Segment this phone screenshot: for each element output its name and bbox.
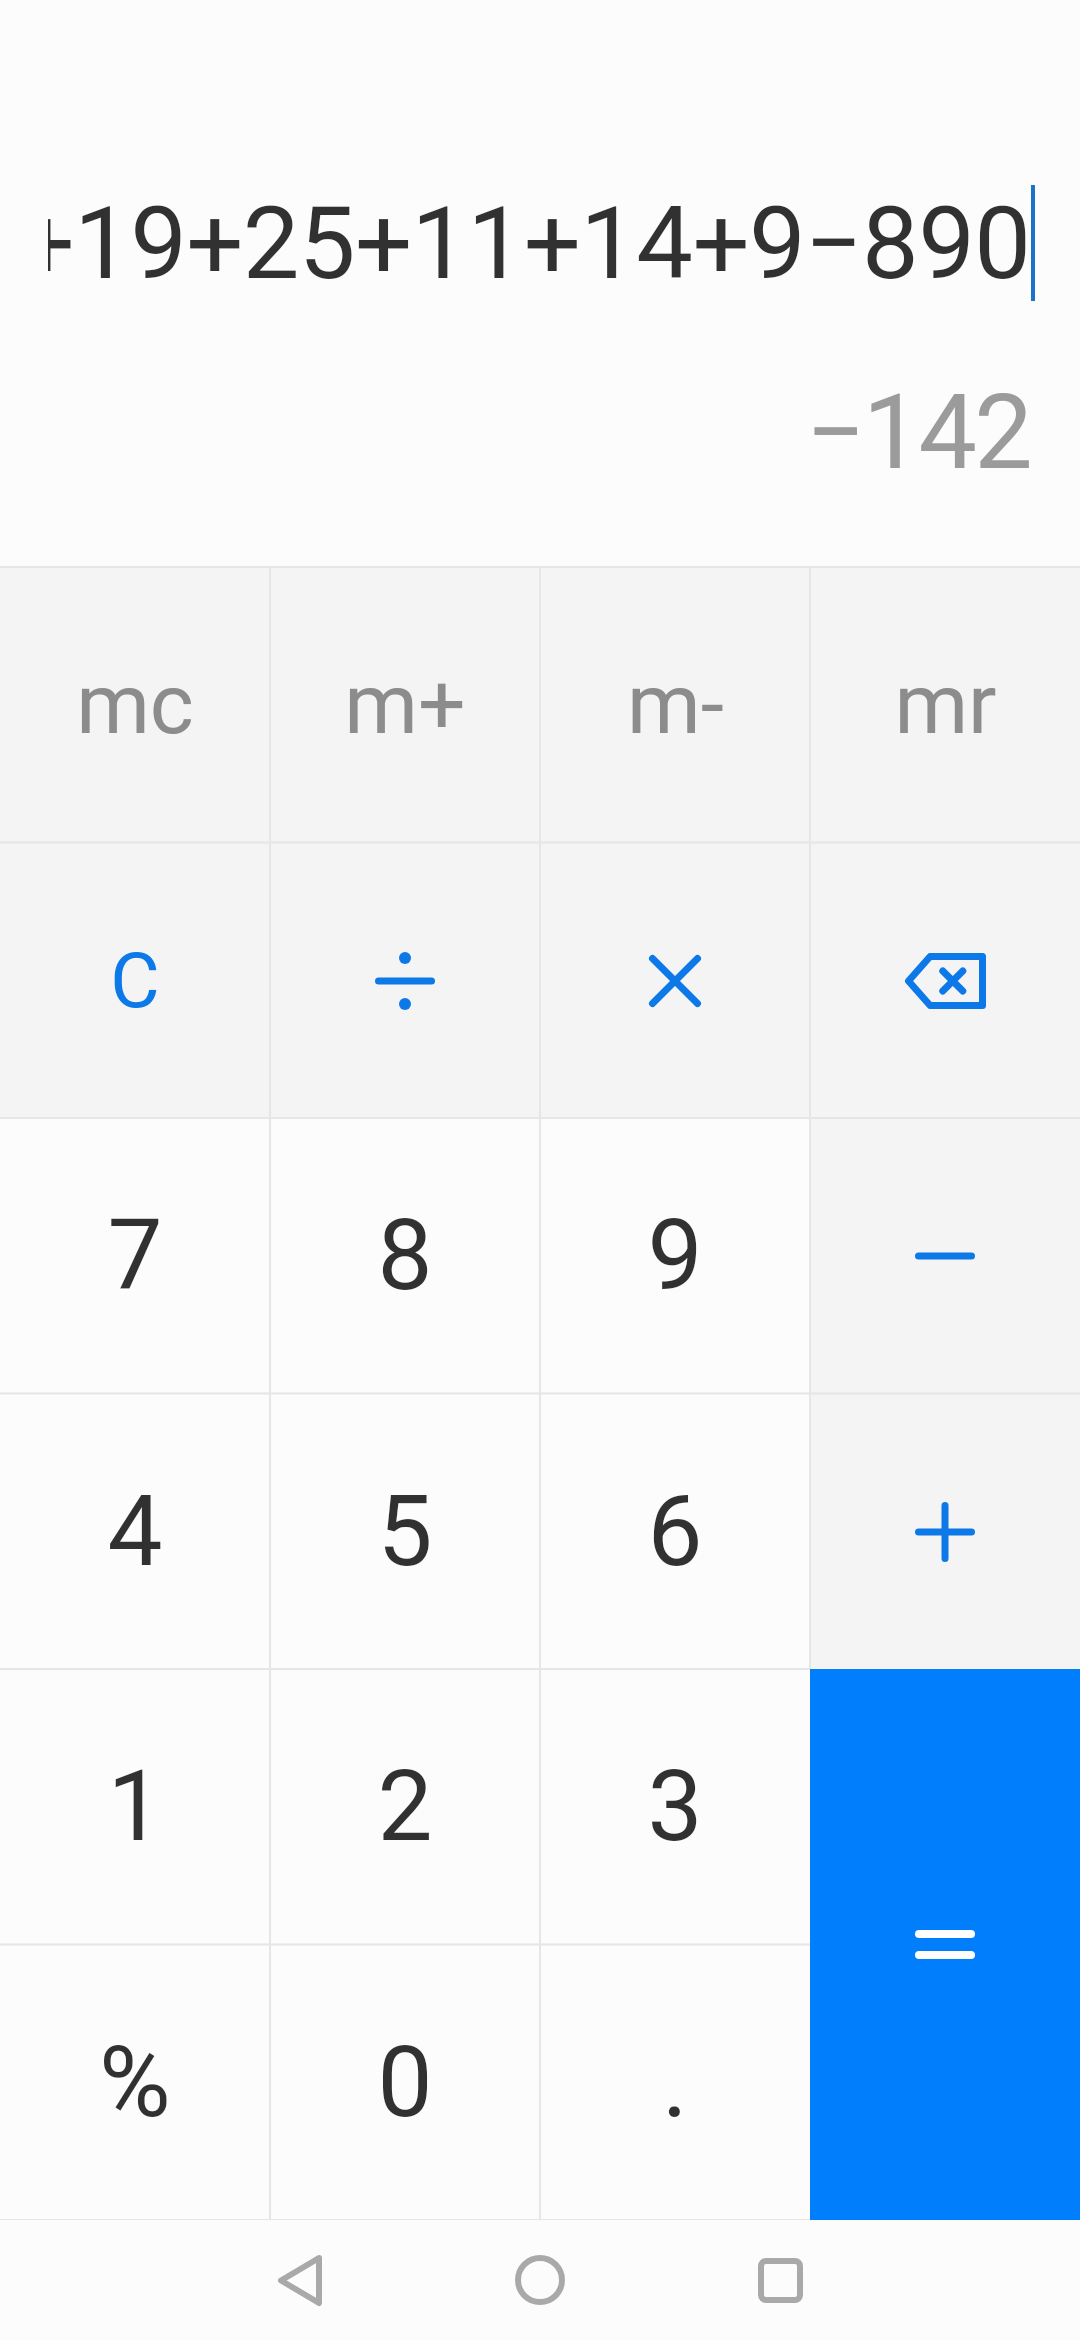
staticText: 1: [107, 1749, 163, 1864]
button[interactable]: Plus: [810, 1394, 1080, 1670]
staticText: %: [99, 2025, 171, 2140]
button[interactable]: Minus: [810, 1118, 1080, 1394]
button[interactable]: 7: [0, 1118, 270, 1394]
button[interactable]: %: [0, 1945, 270, 2221]
button[interactable]: m-: [540, 567, 810, 843]
staticText: 3: [647, 1749, 703, 1864]
staticText: 6: [647, 1474, 703, 1589]
button[interactable]: Clear: [0, 843, 270, 1119]
button[interactable]: Recent apps: [720, 2220, 840, 2340]
button[interactable]: Equals: [810, 1669, 1080, 2220]
staticText: m+: [344, 655, 466, 753]
button[interactable]: mc: [0, 567, 270, 843]
button[interactable]: 3: [540, 1669, 810, 1945]
button[interactable]: .: [540, 1945, 810, 2221]
button[interactable]: Back: [240, 2220, 360, 2340]
staticText: .: [662, 2025, 688, 2140]
staticText: m-: [627, 655, 724, 753]
button[interactable]: mr: [810, 567, 1080, 843]
button[interactable]: Divide: [270, 843, 540, 1119]
button[interactable]: Backspace: [810, 843, 1080, 1119]
button[interactable]: Multiply: [540, 843, 810, 1119]
button[interactable]: 6: [540, 1394, 810, 1670]
button[interactable]: 4: [0, 1394, 270, 1670]
staticText: C: [110, 936, 160, 1025]
staticText: 9: [647, 1198, 703, 1313]
staticText: 4: [107, 1474, 163, 1589]
button[interactable]: 5: [270, 1394, 540, 1670]
staticText: 0: [377, 2025, 433, 2140]
button[interactable]: 1: [0, 1669, 270, 1945]
staticText: 9+17+8+19+25+11+14+9−890: [48, 184, 1031, 302]
staticText: 7: [107, 1198, 163, 1313]
staticText: −142: [806, 372, 1031, 494]
staticText: 8: [377, 1198, 433, 1313]
button[interactable]: 9: [540, 1118, 810, 1394]
staticText: mr: [894, 655, 997, 753]
staticText: 2: [377, 1749, 433, 1864]
button[interactable]: 2: [270, 1669, 540, 1945]
button[interactable]: 0: [270, 1945, 540, 2221]
staticText: mc: [76, 655, 194, 753]
button[interactable]: Home: [480, 2220, 600, 2340]
staticText: 5: [377, 1474, 433, 1589]
button[interactable]: 8: [270, 1118, 540, 1394]
button[interactable]: m+: [270, 567, 540, 843]
